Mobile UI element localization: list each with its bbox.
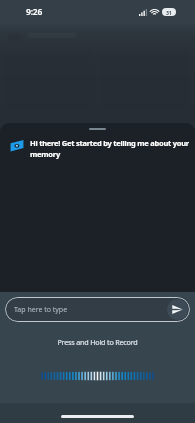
staticText: Hi there! Get started by telling me abou…	[30, 138, 192, 159]
staticText: 31	[166, 9, 172, 16]
button[interactable]: Send	[167, 299, 188, 320]
button[interactable]: Hi there! Get started by telling me abou…	[10, 138, 192, 159]
staticText: 9:26	[26, 6, 43, 18]
staticText: Tap here to type	[14, 305, 68, 315]
button[interactable]: Tap here to type	[5, 297, 190, 322]
staticText: Press and Hold to Record	[0, 337, 195, 347]
